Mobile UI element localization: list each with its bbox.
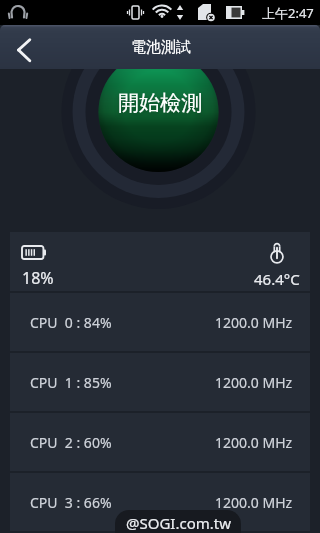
button[interactable]: Back xyxy=(0,25,48,69)
button[interactable]: CPU 3 : 66% xyxy=(10,473,310,531)
staticText: 1200.0 MHz xyxy=(215,373,293,392)
staticText: 18% xyxy=(22,267,54,289)
button[interactable]: 開始檢測 xyxy=(100,52,220,172)
staticText: 電池測試 xyxy=(131,38,191,57)
button[interactable]: CPU 2 : 60% xyxy=(10,413,310,471)
staticText: 上午2:47 xyxy=(262,4,314,22)
staticText: CPU 1 : 85% xyxy=(30,373,112,392)
button[interactable]: CPU 1 : 85% xyxy=(10,353,310,411)
staticText: 開始檢測 xyxy=(118,90,202,116)
staticText: 1200.0 MHz xyxy=(215,433,293,452)
staticText: 46.4°C xyxy=(254,269,300,289)
staticText: 1200.0 MHz xyxy=(215,313,293,332)
staticText: 1200.0 MHz xyxy=(215,493,293,512)
button[interactable]: CPU 0 : 84% xyxy=(10,293,310,351)
staticText: @SOGI.com.tw xyxy=(126,513,231,533)
staticText: CPU 0 : 84% xyxy=(30,313,112,332)
staticText: CPU 2 : 60% xyxy=(30,433,112,452)
staticText: CPU 3 : 66% xyxy=(30,493,112,512)
